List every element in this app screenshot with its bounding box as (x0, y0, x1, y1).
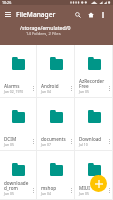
staticText: documents (41, 136, 66, 142)
button[interactable]: Item options (68, 84, 74, 92)
staticText: downloaded_rom (4, 180, 30, 191)
button[interactable]: Item options (106, 186, 112, 194)
button[interactable]: Android (37, 45, 75, 98)
button[interactable]: Item options (30, 137, 36, 145)
staticText: AzRecorderFree (79, 78, 105, 89)
staticText: Alarms (4, 83, 20, 89)
button[interactable]: Item options (30, 186, 36, 194)
staticText: Jun 05 (4, 191, 14, 196)
staticText: Jun 05 (4, 142, 14, 147)
button[interactable]: Alarms (0, 45, 37, 98)
staticText: DCIM (4, 136, 17, 142)
button[interactable]: Item options (106, 137, 112, 145)
button[interactable]: DCIM (0, 98, 37, 151)
button[interactable]: Item options (106, 84, 112, 92)
button[interactable]: AzRecorderFree (75, 45, 113, 98)
staticText: MIUI (79, 185, 90, 191)
staticText: Jun 04 (41, 191, 51, 196)
button[interactable]: Add (90, 175, 107, 192)
button[interactable]: Item options (68, 137, 74, 145)
button[interactable]: Home (84, 8, 97, 21)
staticText: Jul 10 (79, 142, 88, 147)
staticText: FileManager (16, 10, 56, 19)
button[interactable]: Menu (0, 6, 16, 22)
staticText: 10:26 (2, 0, 12, 5)
staticText: Android (41, 83, 59, 89)
button[interactable]: Search (71, 8, 84, 21)
button[interactable]: Item options (30, 84, 36, 92)
staticText: 14 Folders, 2 Files (26, 31, 61, 37)
button[interactable]: Download (75, 98, 113, 151)
button[interactable]: mshop (37, 151, 75, 200)
button[interactable]: downloaded_rom (0, 151, 37, 200)
staticText: mshop (41, 185, 57, 191)
staticText: Jun 07 (41, 142, 51, 147)
button[interactable]: Item options (68, 186, 74, 194)
button[interactable]: MIUI (75, 151, 113, 200)
button[interactable]: documents (37, 98, 75, 151)
staticText: Download (79, 136, 102, 142)
staticText: /storage/emulated/0 (20, 24, 71, 31)
staticText: Jun 04 (41, 89, 51, 94)
button[interactable]: More options (97, 8, 109, 21)
staticText: Jun 05 (79, 89, 89, 94)
staticText: Jun 05 (79, 191, 89, 196)
staticText: Jan 02, 1970 (4, 89, 24, 94)
